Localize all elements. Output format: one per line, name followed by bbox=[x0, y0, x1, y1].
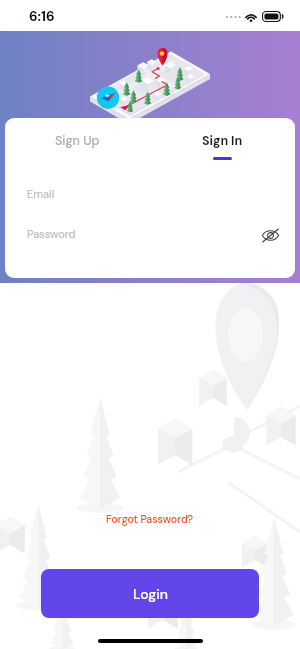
staticText: Email bbox=[27, 187, 55, 201]
staticText: Login bbox=[133, 585, 168, 603]
staticText: Password bbox=[27, 227, 76, 241]
staticText: Sign Up bbox=[55, 133, 100, 149]
button[interactable]: Show password bbox=[256, 221, 284, 249]
staticText: Forgot Password? bbox=[106, 513, 194, 527]
staticText: 6:16 bbox=[29, 8, 55, 26]
staticText: Sign In bbox=[202, 133, 243, 149]
button[interactable]: Forgot Password? bbox=[0, 507, 300, 533]
button[interactable]: Sign In bbox=[150, 118, 295, 164]
button[interactable]: Sign Up bbox=[5, 118, 150, 164]
button[interactable]: Login bbox=[41, 569, 259, 618]
